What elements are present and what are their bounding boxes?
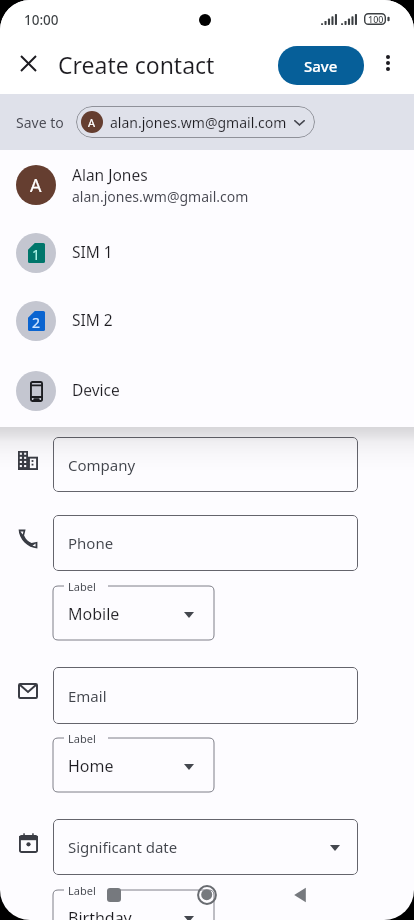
- staticText: Home: [68, 755, 114, 777]
- staticText: alan.jones.wm@gmail.com: [110, 113, 287, 132]
- staticText: Device: [72, 379, 120, 400]
- button[interactable]: 2: [0, 287, 414, 355]
- staticText: Phone: [68, 533, 114, 553]
- staticText: 10:00: [24, 11, 59, 29]
- staticText: 100: [368, 13, 384, 25]
- button[interactable]: Recent apps: [107, 888, 121, 902]
- button[interactable]: Email: [53, 667, 358, 724]
- button[interactable]: A: [76, 106, 315, 138]
- staticText: A: [30, 173, 42, 198]
- staticText: Significant date: [68, 837, 178, 857]
- staticText: 1: [32, 245, 41, 264]
- staticText: Save: [304, 56, 338, 76]
- staticText: Email: [68, 686, 107, 706]
- button[interactable]: More options: [368, 43, 408, 83]
- button[interactable]: Label: [53, 578, 214, 640]
- staticText: Birthday: [68, 907, 132, 920]
- button[interactable]: Home: [197, 885, 217, 905]
- staticText: Company: [68, 455, 136, 475]
- staticText: SIM 1: [72, 241, 113, 262]
- staticText: A: [88, 115, 96, 130]
- button[interactable]: Label: [53, 730, 214, 792]
- staticText: Save to: [16, 113, 64, 132]
- staticText: Mobile: [68, 603, 120, 625]
- staticText: SIM 2: [72, 309, 113, 330]
- button[interactable]: Back: [293, 887, 307, 903]
- staticText: Create contact: [58, 49, 215, 80]
- button[interactable]: Phone: [53, 515, 358, 571]
- staticText: Label: [68, 579, 96, 594]
- staticText: Label: [68, 731, 96, 746]
- button[interactable]: Company: [53, 437, 358, 492]
- staticText: 2: [32, 313, 41, 332]
- button[interactable]: 1: [0, 219, 414, 287]
- button[interactable]: Significant date: [53, 819, 358, 875]
- button[interactable]: A: [0, 150, 414, 219]
- button[interactable]: Save: [278, 46, 364, 85]
- button[interactable]: Close: [8, 43, 48, 83]
- button[interactable]: Device: [0, 355, 414, 427]
- staticText: Label: [68, 883, 96, 898]
- button[interactable]: Label: [53, 882, 214, 920]
- staticText: alan.jones.wm@gmail.com: [72, 187, 249, 206]
- staticText: Alan Jones: [72, 164, 148, 185]
